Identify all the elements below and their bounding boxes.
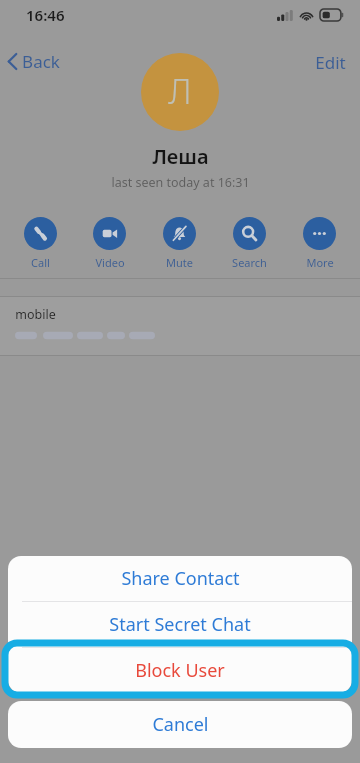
staticText: mobile bbox=[15, 306, 56, 323]
staticText: More bbox=[306, 255, 334, 270]
button[interactable]: Mute bbox=[157, 215, 202, 272]
staticText: last seen today at 16:31 bbox=[111, 174, 250, 191]
staticText: Start Secret Chat bbox=[109, 612, 251, 637]
button[interactable]: Start Secret Chat bbox=[8, 602, 352, 647]
staticText: Mute bbox=[166, 255, 193, 270]
button[interactable]: mobile bbox=[0, 297, 360, 355]
staticText: Share Contact bbox=[121, 566, 240, 591]
button[interactable]: Back bbox=[0, 48, 68, 74]
button[interactable]: Cancel bbox=[8, 701, 352, 748]
button[interactable]: Edit bbox=[301, 48, 360, 74]
staticText: Леша bbox=[152, 143, 209, 170]
staticText: Call bbox=[31, 255, 50, 270]
staticText: Cancel bbox=[152, 712, 209, 737]
staticText: 16:46 bbox=[26, 5, 65, 25]
staticText: Block User bbox=[135, 658, 225, 683]
staticText: Edit bbox=[315, 51, 346, 71]
button[interactable]: Share Contact bbox=[8, 556, 352, 601]
button[interactable]: More bbox=[297, 215, 342, 272]
button[interactable]: Search bbox=[226, 215, 273, 272]
staticText: Search bbox=[232, 255, 267, 270]
button[interactable]: Video bbox=[87, 215, 132, 272]
staticText: Back bbox=[22, 50, 60, 72]
button[interactable]: Block User bbox=[8, 648, 352, 693]
staticText: Л bbox=[168, 68, 192, 114]
button[interactable]: Call bbox=[18, 215, 63, 272]
staticText: Video bbox=[95, 255, 125, 270]
